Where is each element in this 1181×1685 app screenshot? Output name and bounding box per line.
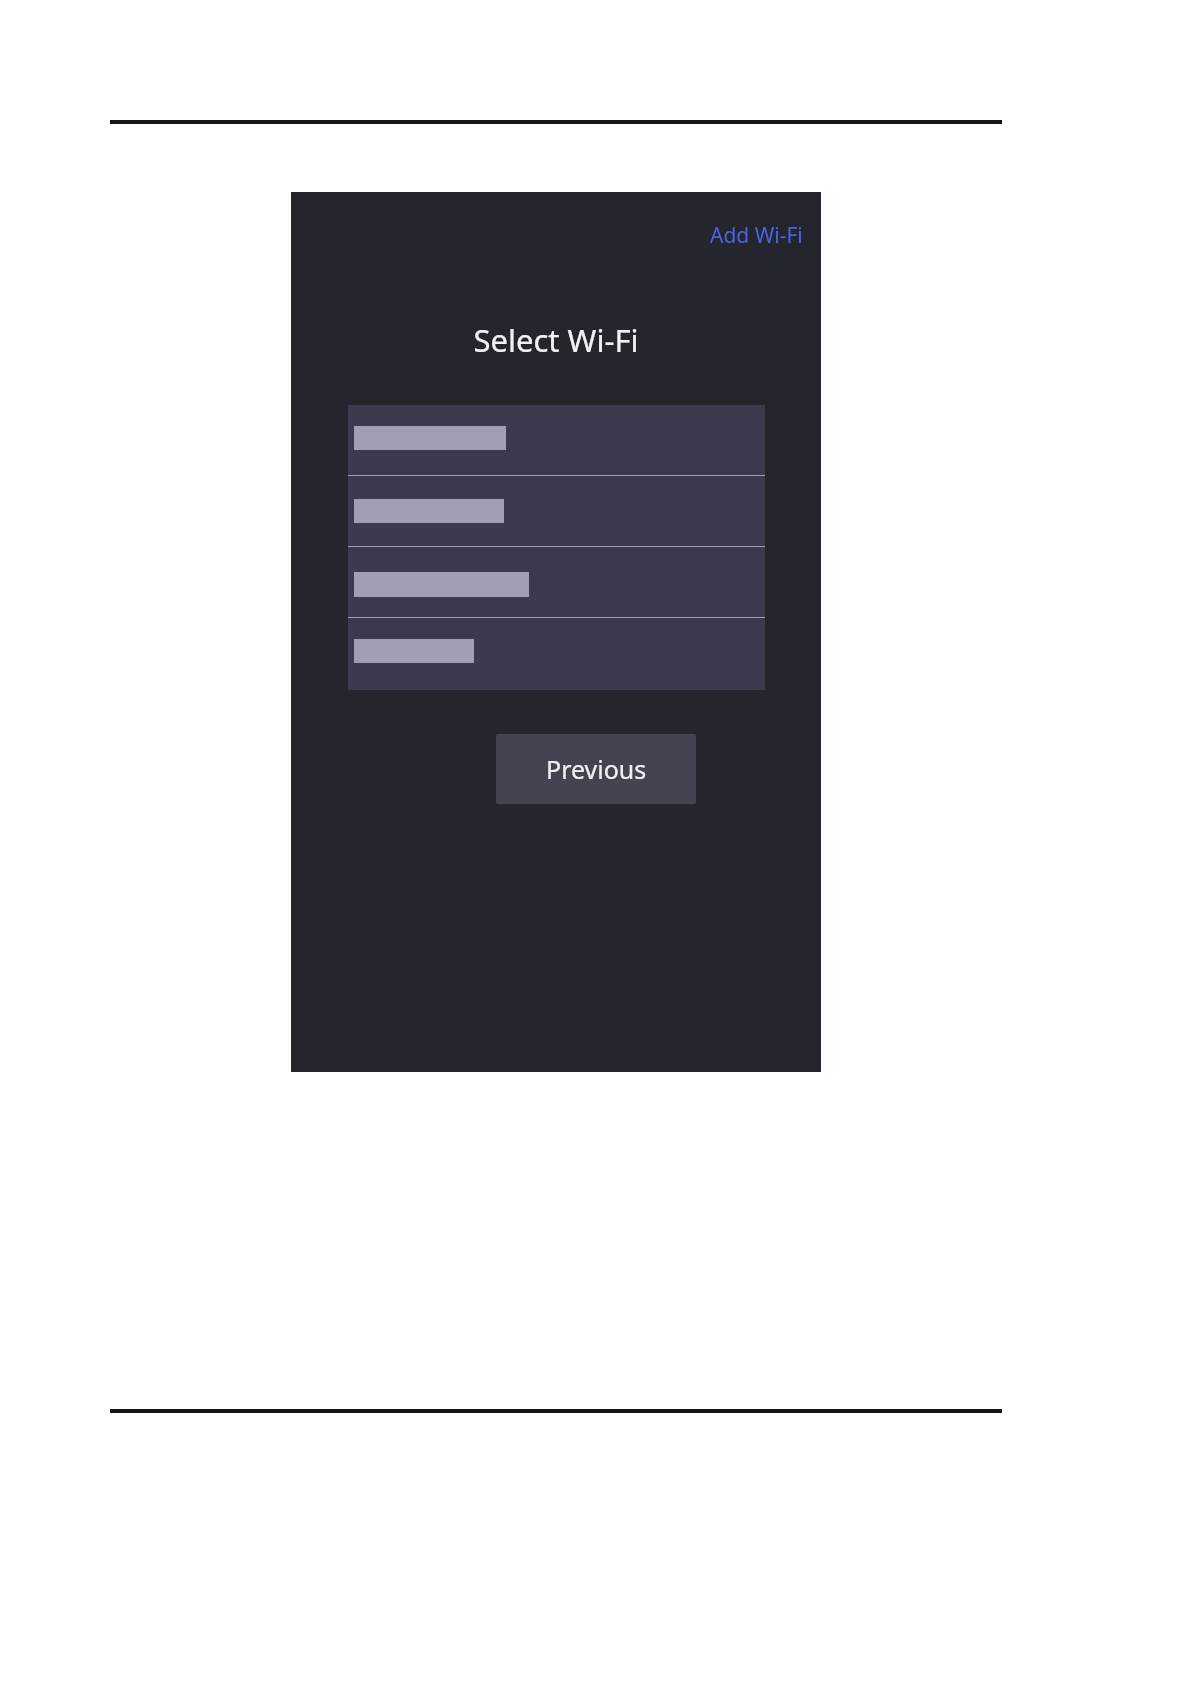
staticText: Previous xyxy=(546,752,647,786)
button[interactable]: Wi-Fi network 3 xyxy=(348,547,765,617)
button[interactable]: Add Wi-Fi xyxy=(704,216,809,255)
button[interactable]: Wi-Fi network 1 xyxy=(348,405,765,475)
button[interactable]: Previous xyxy=(496,734,696,804)
button[interactable]: Wi-Fi network 2 xyxy=(348,476,765,546)
button[interactable]: Wi-Fi network 4 xyxy=(348,618,765,688)
staticText: Add Wi-Fi xyxy=(710,221,803,250)
staticText: Select Wi-Fi xyxy=(473,319,639,361)
